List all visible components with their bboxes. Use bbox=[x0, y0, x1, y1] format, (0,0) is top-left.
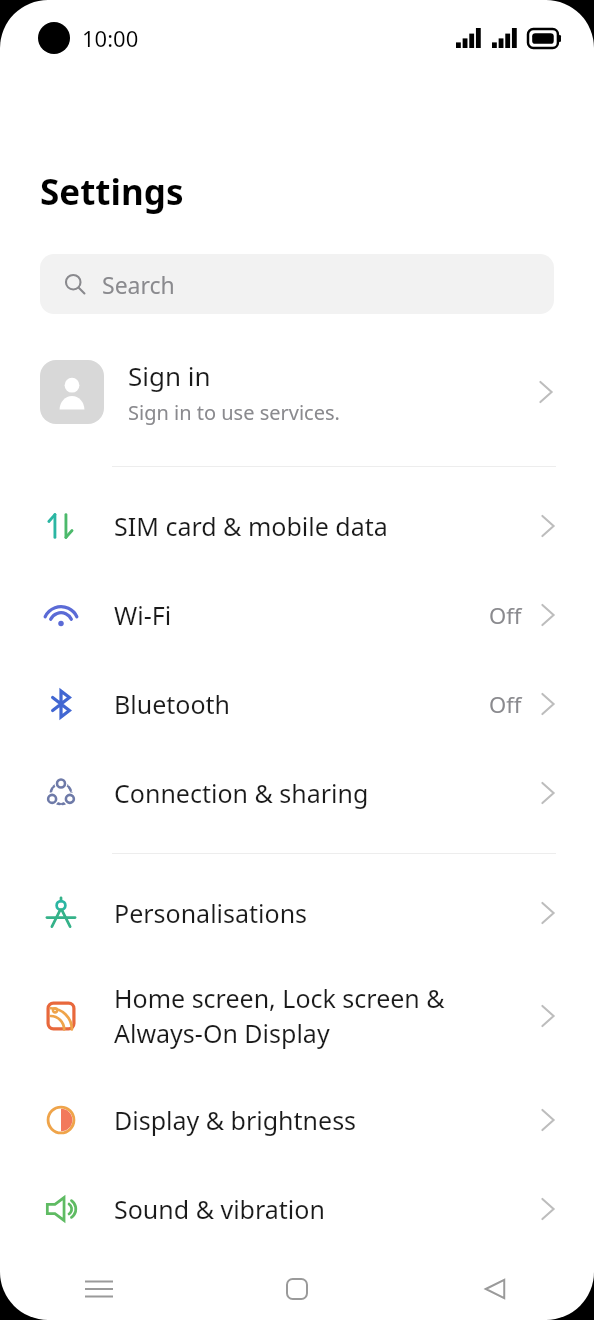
button[interactable]: Home screen, Lock screen & Always-On Dis… bbox=[0, 957, 594, 1075]
button[interactable]: Display & brightness bbox=[0, 1075, 594, 1164]
button[interactable]: Home bbox=[198, 1258, 396, 1320]
staticText: Sign in to use services. bbox=[128, 399, 340, 426]
button[interactable]: Connection & sharing bbox=[0, 748, 594, 837]
button[interactable]: Back bbox=[396, 1258, 594, 1320]
button[interactable]: Recent apps bbox=[0, 1258, 198, 1320]
staticText: Personalisations bbox=[114, 896, 540, 930]
staticText: Bluetooth bbox=[114, 687, 489, 721]
button[interactable]: Personalisations bbox=[0, 868, 594, 957]
button[interactable]: Search bbox=[40, 254, 554, 314]
staticText: 10:00 bbox=[82, 23, 139, 53]
staticText: Sign in bbox=[128, 358, 211, 393]
button[interactable]: Bluetooth bbox=[0, 659, 594, 748]
staticText: Home screen, Lock screen & Always-On Dis… bbox=[114, 981, 540, 1051]
staticText: Off bbox=[489, 600, 522, 630]
staticText: Search bbox=[102, 269, 175, 300]
staticText: Display & brightness bbox=[114, 1103, 540, 1137]
staticText: Sound & vibration bbox=[114, 1192, 540, 1226]
button[interactable]: SIM card & mobile data bbox=[0, 481, 594, 570]
staticText: Off bbox=[489, 689, 522, 719]
button[interactable]: Sound & vibration bbox=[0, 1164, 594, 1253]
button[interactable]: Sign in bbox=[0, 344, 594, 440]
staticText: Settings bbox=[40, 168, 184, 216]
staticText: Wi-Fi bbox=[114, 598, 489, 632]
button[interactable]: Wi-Fi bbox=[0, 570, 594, 659]
staticText: SIM card & mobile data bbox=[114, 509, 540, 543]
staticText: Connection & sharing bbox=[114, 776, 540, 810]
